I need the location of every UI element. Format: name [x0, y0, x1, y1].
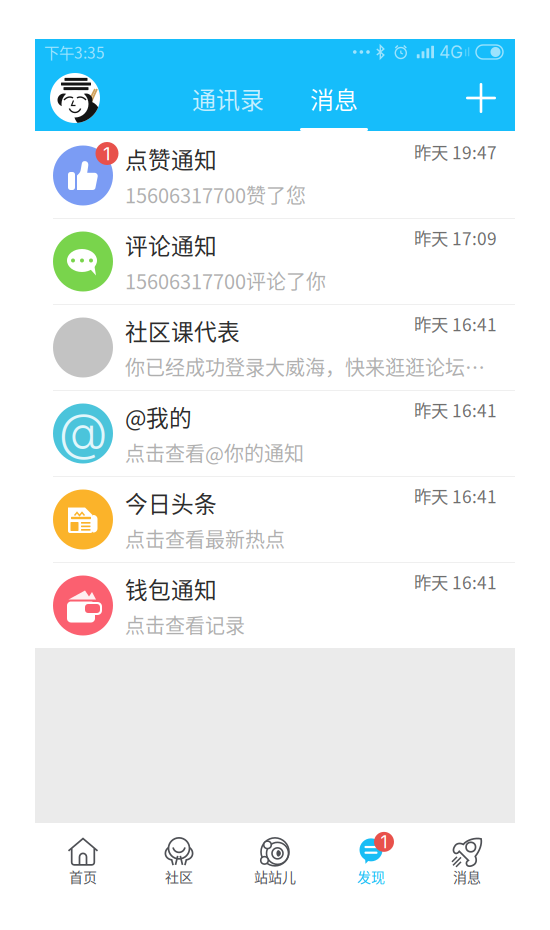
staticText: 评论通知: [125, 228, 217, 261]
button[interactable]: @: [35, 391, 515, 476]
staticText: 社区: [165, 866, 193, 887]
staticText: 昨天 16:41: [414, 569, 497, 594]
staticText: 消息: [453, 866, 481, 887]
staticText: 首页: [69, 866, 97, 887]
staticText: 昨天 16:41: [414, 397, 497, 422]
staticText: 发现: [357, 866, 385, 887]
button[interactable]: Profile: [45, 68, 105, 128]
staticText: 点赞通知: [125, 142, 217, 175]
staticText: 昨天 16:41: [414, 311, 497, 336]
button[interactable]: 站站儿: [227, 819, 323, 902]
button[interactable]: Add: [454, 71, 508, 125]
button[interactable]: 通讯录: [189, 73, 267, 131]
staticText: 站站儿: [254, 866, 296, 887]
staticText: 1: [380, 831, 387, 852]
staticText: @: [58, 401, 107, 462]
button[interactable]: 钱包通知: [35, 563, 515, 648]
staticText: 今日头条: [125, 486, 217, 519]
staticText: 钱包通知: [125, 572, 217, 605]
staticText: 点击查看最新热点: [125, 524, 285, 553]
staticText: 15606317700评论了你: [125, 266, 326, 295]
staticText: 15606317700赞了您: [125, 180, 306, 209]
button[interactable]: 社区: [131, 819, 227, 902]
button[interactable]: 今日头条: [35, 477, 515, 562]
staticText: 通讯录: [192, 81, 264, 116]
staticText: 你已经成功登录大威海，快来逛逛论坛…: [125, 352, 485, 381]
staticText: @我的: [125, 400, 192, 433]
staticText: 4G: [439, 41, 463, 62]
button[interactable]: 消息: [419, 819, 515, 902]
staticText: ıl: [464, 45, 470, 59]
button[interactable]: 评论通知: [35, 219, 515, 304]
staticText: 昨天 17:09: [414, 225, 497, 250]
button[interactable]: 1: [323, 819, 419, 902]
button[interactable]: 消息: [295, 73, 373, 131]
button[interactable]: 1: [35, 133, 515, 218]
staticText: 昨天 19:47: [414, 139, 497, 164]
button[interactable]: 首页: [35, 819, 131, 902]
staticText: 社区课代表: [125, 314, 240, 347]
staticText: 昨天 16:41: [414, 483, 497, 508]
staticText: 消息: [310, 81, 358, 116]
button[interactable]: 社区课代表: [35, 305, 515, 390]
staticText: 1: [103, 142, 111, 165]
staticText: 点击查看记录: [125, 610, 245, 639]
staticText: 下午3:35: [44, 41, 105, 63]
staticText: 点击查看@你的通知: [125, 438, 304, 467]
